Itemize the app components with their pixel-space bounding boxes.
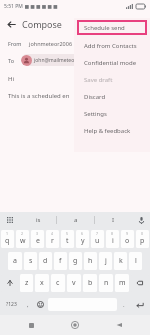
button[interactable]: c: [51, 274, 65, 292]
staticText: m: [119, 278, 126, 288]
button[interactable]: 6: [76, 230, 89, 248]
staticText: a: [13, 256, 17, 266]
button[interactable]: Home: [62, 315, 88, 335]
staticText: q: [5, 236, 10, 246]
staticText: p: [140, 236, 145, 246]
staticText: y: [81, 236, 85, 246]
staticText: v: [72, 278, 76, 288]
button[interactable]: 7: [91, 230, 104, 248]
button[interactable]: 8: [106, 230, 119, 248]
staticText: 6: [81, 231, 84, 236]
staticText: x: [40, 278, 44, 288]
staticText: 8: [111, 231, 114, 236]
staticText: johnmeteor2006: [29, 40, 73, 47]
button[interactable]: Voice input: [132, 212, 150, 228]
staticText: 9: [126, 231, 129, 236]
staticText: b: [88, 278, 93, 288]
staticText: a: [74, 216, 78, 224]
staticText: john@mailmeteor: [34, 57, 77, 64]
button[interactable]: Back: [0, 13, 22, 35]
staticText: d: [43, 256, 48, 266]
staticText: is: [36, 216, 41, 224]
staticText: To: [8, 57, 15, 64]
staticText: This is a scheduled en: [8, 92, 70, 100]
button[interactable]: v: [67, 274, 81, 292]
button[interactable]: a: [57, 212, 94, 228]
button[interactable]: Recent apps: [18, 315, 44, 335]
staticText: c: [56, 278, 60, 288]
button[interactable]: is: [20, 212, 56, 228]
staticText: s: [29, 256, 33, 266]
staticText: n: [104, 278, 109, 288]
staticText: 5:51 PM: [4, 3, 23, 10]
staticText: .: [123, 301, 125, 309]
button[interactable]: l: [129, 252, 142, 270]
button[interactable]: Enter: [130, 294, 150, 315]
button[interactable]: Confidential mode: [74, 54, 150, 71]
button[interactable]: h: [84, 252, 97, 270]
staticText: 5: [66, 231, 69, 236]
button[interactable]: b: [83, 274, 97, 292]
button[interactable]: s: [24, 252, 37, 270]
staticText: f: [59, 256, 62, 266]
staticText: u: [95, 236, 100, 246]
button[interactable]: k: [114, 252, 127, 270]
button[interactable]: Shift: [1, 274, 18, 292]
button[interactable]: 1: [1, 230, 14, 248]
button[interactable]: a: [8, 252, 22, 270]
staticText: Hi: [8, 75, 14, 83]
button[interactable]: g: [69, 252, 82, 270]
button[interactable]: Save draft: [74, 71, 150, 88]
staticText: j: [105, 256, 107, 266]
button[interactable]: Backspace: [131, 274, 149, 292]
staticText: Help & feedback: [84, 127, 131, 135]
staticText: 1: [6, 231, 9, 236]
button[interactable]: Settings: [74, 105, 150, 122]
staticText: g: [73, 256, 78, 266]
button[interactable]: 2: [16, 230, 29, 248]
staticText: Confidential mode: [84, 59, 137, 67]
staticText: Schedule send: [84, 24, 125, 32]
staticText: 2: [21, 231, 24, 236]
button[interactable]: 3: [31, 230, 44, 248]
button[interactable]: I: [95, 212, 132, 228]
button[interactable]: Add from Contacts: [74, 37, 150, 54]
staticText: o: [125, 236, 130, 246]
button[interactable]: j: [99, 252, 112, 270]
staticText: 3: [36, 231, 39, 236]
staticText: Settings: [84, 110, 107, 118]
button[interactable]: ,: [22, 294, 33, 315]
button[interactable]: 9: [121, 230, 134, 248]
staticText: I: [112, 216, 115, 224]
button[interactable]: 0: [136, 230, 149, 248]
staticText: r: [51, 236, 54, 246]
staticText: t: [66, 236, 69, 246]
staticText: h: [88, 256, 93, 266]
button[interactable]: Emoji: [33, 294, 47, 315]
button[interactable]: 5: [61, 230, 74, 248]
button[interactable]: john@mailmeteor: [21, 54, 77, 66]
button[interactable]: n: [99, 274, 113, 292]
button[interactable]: ?123: [0, 294, 22, 315]
button[interactable]: 4: [46, 230, 59, 248]
button[interactable]: f: [54, 252, 67, 270]
button[interactable]: m: [115, 274, 129, 292]
staticText: e: [36, 236, 40, 246]
button[interactable]: Discard: [74, 88, 150, 105]
staticText: ?123: [6, 301, 17, 308]
staticText: Discard: [84, 93, 106, 101]
staticText: ,: [27, 301, 29, 309]
button[interactable]: x: [35, 274, 49, 292]
button[interactable]: d: [39, 252, 52, 270]
button[interactable]: Back: [106, 315, 132, 335]
button[interactable]: Help & feedback: [74, 122, 150, 139]
staticText: Save draft: [84, 76, 113, 84]
staticText: Compose: [22, 18, 62, 30]
button[interactable]: z: [20, 274, 33, 292]
staticText: 0: [141, 231, 144, 236]
button[interactable]: Schedule send: [77, 20, 147, 35]
staticText: From: [8, 40, 22, 47]
button[interactable]: Emoji keyboard: [0, 212, 20, 228]
